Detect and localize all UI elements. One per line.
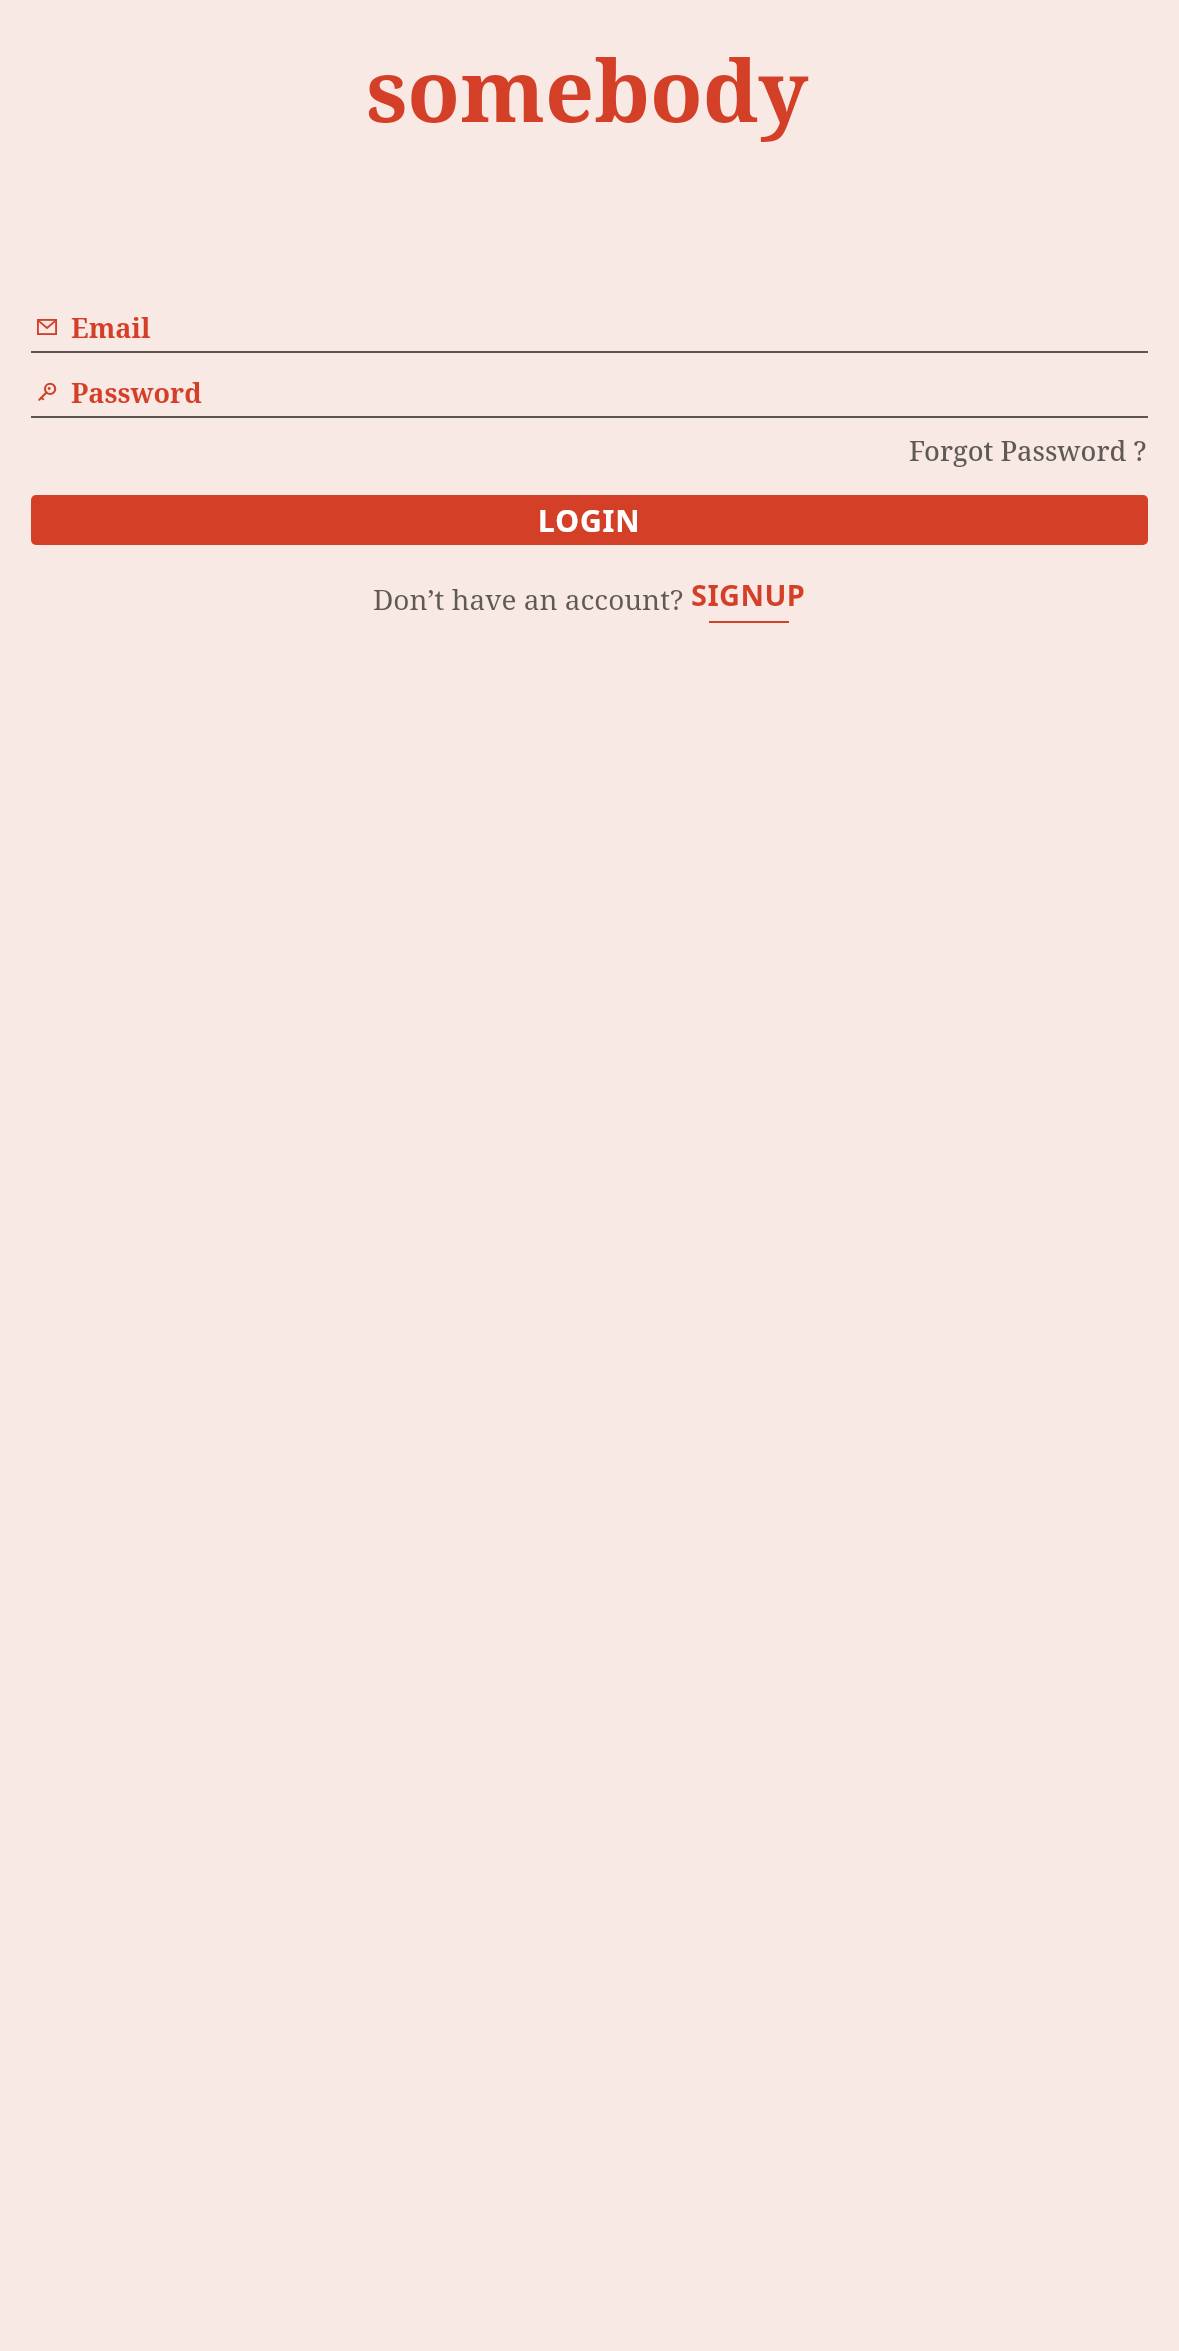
button[interactable]: Forgot Password ? [907, 428, 1149, 473]
button[interactable]: LOGIN [31, 495, 1148, 545]
button[interactable]: Password [31, 368, 1148, 418]
staticText: Password [71, 374, 202, 411]
staticText: LOGIN [538, 500, 641, 541]
button[interactable]: SIGNUP [691, 575, 806, 623]
other: Password [37, 382, 57, 402]
button[interactable]: Email [31, 303, 1148, 353]
staticText: Forgot Password ? [909, 432, 1147, 469]
staticText: Email [71, 309, 151, 346]
staticText: Don’t have an account? [373, 580, 684, 618]
other: Email [37, 319, 57, 335]
staticText: SIGNUP [691, 575, 806, 614]
staticText: somebody [366, 30, 809, 147]
